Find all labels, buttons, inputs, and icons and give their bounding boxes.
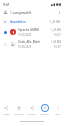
staticText: 1,43 MB [51, 40, 61, 44]
staticText: Löschen [14, 112, 24, 115]
staticText: Auswählen [10, 20, 26, 24]
button[interactable]: Mehr [51, 104, 64, 115]
staticText: 9:41 [3, 2, 10, 7]
staticText: 1,43 MB [50, 20, 61, 24]
staticText: 16:37 [54, 45, 61, 49]
staticText: 16:37 [54, 33, 61, 37]
staticText: Sprache GMBH [18, 28, 40, 32]
button[interactable]: More options [55, 8, 64, 17]
button[interactable]: Orab_Alle_Mark [0, 38, 64, 50]
button[interactable]: Close selection [0, 8, 10, 17]
staticText: 1,43 MB [51, 28, 61, 32]
staticText: Teilen [3, 112, 10, 115]
button[interactable]: Senden [25, 104, 38, 115]
staticText: Senden [27, 112, 36, 115]
staticText: 15.05.2023 [18, 33, 32, 37]
button[interactable]: Umben. [38, 104, 51, 115]
staticText: Orab_Alle_Mark [18, 40, 41, 44]
button[interactable]: Löschen [12, 104, 25, 115]
staticText: 15.05.2023 [18, 45, 32, 49]
button[interactable]: Sprache GMBH [0, 26, 64, 38]
button[interactable]: Auswählen [0, 17, 64, 26]
staticText: 1 ausgewählt [10, 10, 32, 15]
staticText: Mehr [55, 112, 61, 115]
staticText: Umben. [40, 112, 49, 115]
button[interactable]: Teilen [0, 104, 12, 115]
